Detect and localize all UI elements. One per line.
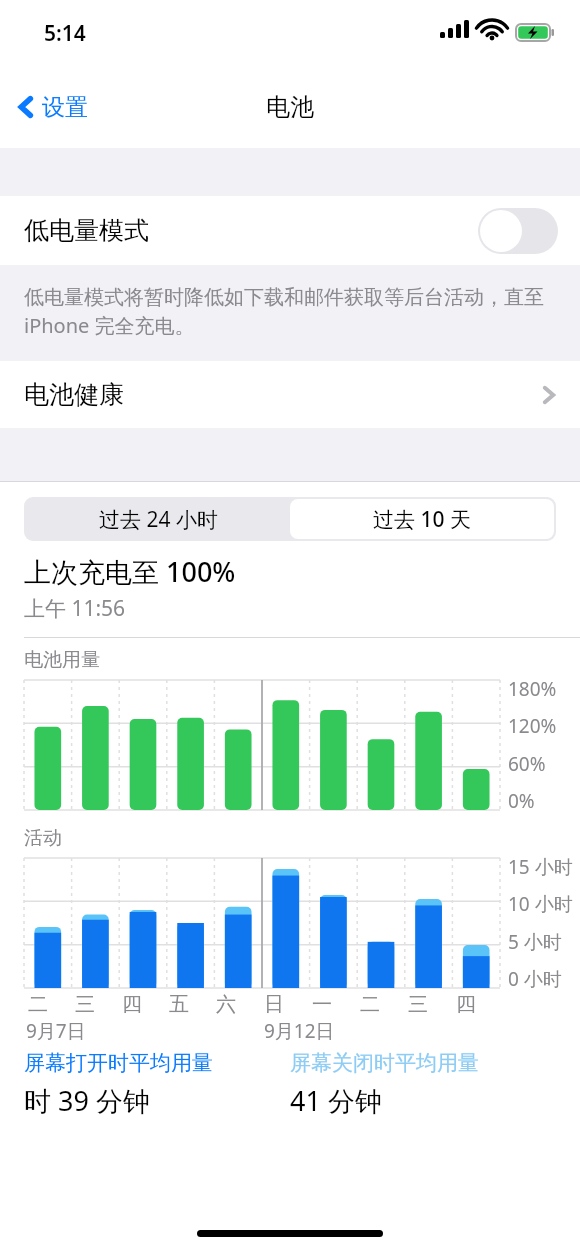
staticText: 低电量模式 xyxy=(24,215,149,246)
staticText: 活动 xyxy=(24,826,62,850)
staticText: 二 xyxy=(360,992,380,1017)
button[interactable]: 电池健康 xyxy=(0,361,580,428)
staticText: 三 xyxy=(75,992,95,1017)
staticText: 电池 xyxy=(266,92,314,122)
staticText: 41 分钟 xyxy=(290,1082,382,1119)
staticText: 低电量模式将暂时降低如下载和邮件获取等后台活动，直至 iPhone 完全充电。 xyxy=(24,283,546,339)
staticText: 180% xyxy=(508,676,557,702)
staticText: 一 xyxy=(312,992,332,1017)
staticText: 上午 11:56 xyxy=(24,594,126,623)
button[interactable]: 设置 xyxy=(0,84,100,130)
button[interactable]: 过去 10 天 xyxy=(290,499,554,539)
staticText: 屏幕打开时平均用量 xyxy=(24,1050,213,1076)
staticText: 屏幕关闭时平均用量 xyxy=(290,1050,479,1076)
staticText: 二 xyxy=(28,992,48,1017)
button[interactable]: 低电量模式 xyxy=(0,196,580,265)
staticText: 15 小时 xyxy=(508,854,573,880)
staticText: 四 xyxy=(122,992,142,1017)
staticText: 五 xyxy=(169,992,189,1017)
staticText: 10 小时 xyxy=(508,891,573,917)
staticText: 9月7日 xyxy=(26,1018,86,1044)
staticText: 120% xyxy=(508,713,557,739)
staticText: 四 xyxy=(456,992,476,1017)
staticText: 日 xyxy=(264,992,284,1017)
staticText: 5 小时 xyxy=(508,929,562,955)
staticText: 9月12日 xyxy=(264,1018,335,1044)
staticText: 时 39 分钟 xyxy=(24,1082,150,1119)
staticText: 60% xyxy=(508,751,546,777)
button[interactable]: 低电量模式开关 xyxy=(478,208,558,254)
staticText: 过去 24 小时 xyxy=(99,505,218,534)
staticText: 六 xyxy=(216,992,236,1017)
staticText: 上次充电至 100% xyxy=(24,553,236,590)
staticText: 三 xyxy=(408,992,428,1017)
staticText: 0% xyxy=(508,788,535,814)
staticText: 过去 10 天 xyxy=(373,505,471,534)
staticText: 0 小时 xyxy=(508,966,562,992)
button[interactable]: 过去 24 小时 xyxy=(26,499,290,539)
staticText: 设置 xyxy=(42,93,88,122)
staticText: 电池健康 xyxy=(24,379,124,410)
staticText: 电池用量 xyxy=(24,648,100,672)
staticText: 5:14 xyxy=(44,19,86,48)
